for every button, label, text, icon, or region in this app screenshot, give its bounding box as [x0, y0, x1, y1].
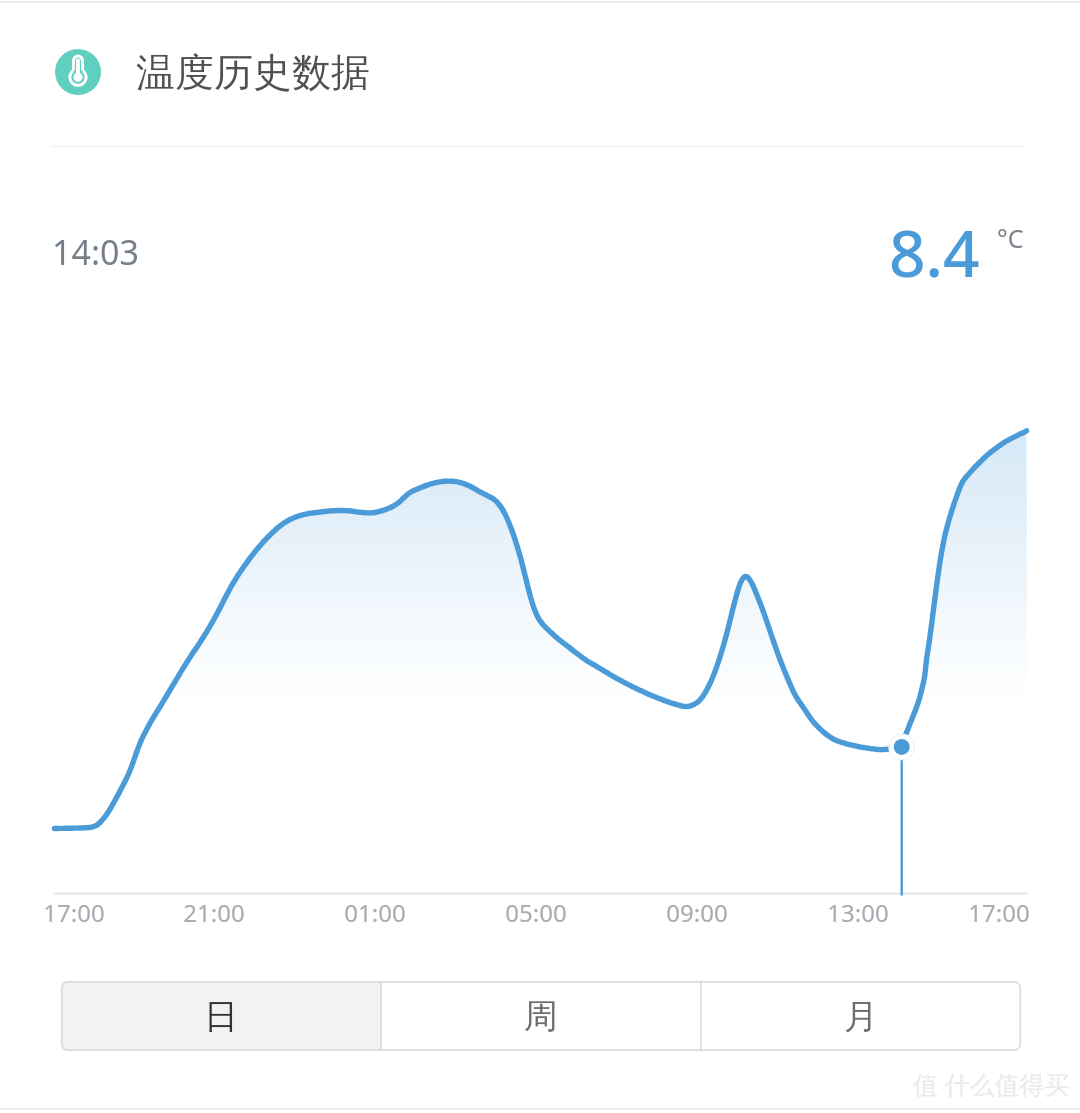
button[interactable]: 周 [381, 981, 701, 1051]
staticText: °C [997, 221, 1024, 255]
other: Temperature history chart [0, 0, 1080, 1113]
staticText: 21:00 [154, 896, 274, 929]
staticText: 17:00 [939, 896, 1059, 929]
staticText: 14:03 [52, 229, 139, 275]
staticText: 月 [844, 995, 878, 1038]
staticText: 值 什么值得买 [913, 1067, 1070, 1101]
staticText: 05:00 [476, 896, 596, 929]
staticText: 17:00 [14, 896, 134, 929]
other: Temperature sensor [55, 49, 101, 95]
staticText: 日 [204, 995, 238, 1038]
staticText: 01:00 [315, 896, 435, 929]
staticText: 温度历史数据 [136, 48, 370, 97]
staticText: 周 [524, 995, 558, 1038]
button[interactable]: 日 [61, 981, 381, 1051]
staticText: 8.4 [889, 209, 980, 296]
staticText: 13:00 [798, 896, 918, 929]
button[interactable]: 月 [701, 981, 1021, 1051]
staticText: 09:00 [637, 896, 757, 929]
button[interactable]: Temperature sensor [55, 29, 415, 114]
